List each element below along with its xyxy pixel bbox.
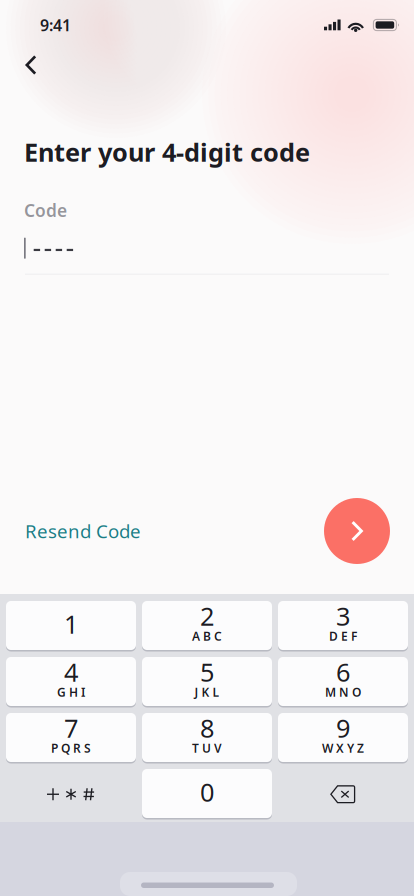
button[interactable]: 8 [142,713,272,763]
staticText: G H I [57,684,85,700]
staticText: Enter your 4-digit code [24,135,310,169]
staticText: Code [24,199,67,222]
staticText: Resend Code [25,519,141,543]
staticText: 3 [336,599,350,633]
button[interactable]: 2 [142,601,272,651]
staticText: 2 [200,599,214,633]
button[interactable]: 6 [278,657,408,707]
button[interactable]: Back [9,47,53,83]
button[interactable]: 7 [6,713,136,763]
button[interactable]: Plus star hash [6,769,136,819]
staticText: 9 [336,711,350,745]
button[interactable]: Delete [278,769,408,819]
staticText: T U V [192,740,222,756]
staticText: 6 [336,655,350,689]
button[interactable]: 3 [278,601,408,651]
staticText: P Q R S [51,740,91,756]
staticText: 1 [64,607,78,641]
staticText: 8 [200,711,214,745]
button[interactable]: Resend Code [25,505,141,557]
staticText: 7 [64,711,78,745]
button[interactable]: 0 [142,769,272,819]
staticText: 4 [64,655,78,689]
button[interactable]: 4 [6,657,136,707]
staticText: 5 [200,655,214,689]
button[interactable]: 9 [278,713,408,763]
button[interactable]: 5 [142,657,272,707]
staticText: W X Y Z [322,740,364,756]
button[interactable]: Continue [324,498,390,564]
button[interactable]: 1 [6,601,136,651]
staticText: 9:41 [40,14,71,36]
staticText: 0 [200,775,214,809]
staticText: A B C [192,628,222,644]
staticText: D E F [329,628,357,644]
staticText: M N O [325,684,361,700]
staticText: J K L [194,684,219,700]
